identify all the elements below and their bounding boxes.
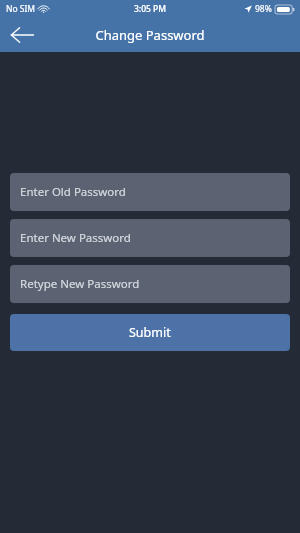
staticText: 98% xyxy=(255,3,272,15)
staticText: No SIM xyxy=(6,3,36,15)
button[interactable]: Submit xyxy=(10,314,290,351)
button[interactable]: Back xyxy=(0,18,44,52)
button[interactable]: Retype New Password xyxy=(10,265,290,303)
staticText: 3:05 PM xyxy=(134,3,167,15)
staticText: Submit xyxy=(129,324,171,341)
button[interactable]: Enter Old Password xyxy=(10,173,290,211)
staticText: Retype New Password xyxy=(20,276,140,292)
staticText: Change Password xyxy=(95,26,205,44)
button[interactable]: Enter New Password xyxy=(10,219,290,257)
staticText: Enter New Password xyxy=(20,230,131,246)
staticText: Enter Old Password xyxy=(20,184,126,200)
